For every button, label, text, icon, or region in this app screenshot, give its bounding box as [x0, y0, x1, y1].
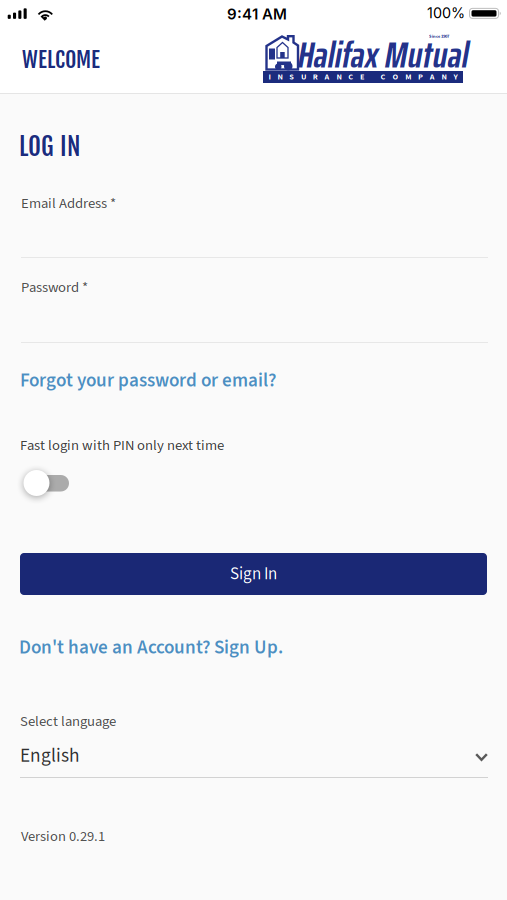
staticText: I: [269, 71, 271, 83]
staticText: Fast login with PIN only next time: [20, 435, 224, 456]
staticText: Don't have an Account? Sign Up.: [19, 634, 283, 661]
staticText: Halifax Mutual: [296, 26, 467, 84]
staticText: N: [442, 71, 447, 83]
staticText: Select language: [20, 711, 116, 732]
staticText: 9:41 AM: [227, 5, 287, 23]
staticText: WELCOME: [22, 46, 100, 73]
staticText: M: [405, 71, 411, 83]
button[interactable]: Password: [21, 277, 488, 343]
staticText: English: [20, 742, 80, 769]
staticText: E: [360, 71, 365, 83]
staticText: LOG IN: [19, 131, 80, 162]
button[interactable]: Don't have an Account? Sign Up.: [19, 634, 283, 661]
staticText: C: [381, 71, 386, 83]
staticText: 100%: [427, 4, 465, 22]
staticText: U: [301, 71, 306, 83]
staticText: Sign In: [230, 562, 277, 586]
button[interactable]: Forgot your password or email?: [20, 367, 276, 394]
staticText: R: [313, 71, 318, 83]
button[interactable]: Select language: English: [20, 742, 488, 778]
button[interactable]: Fast login with PIN only next time: [19, 467, 66, 496]
staticText: Since 1907: [429, 33, 449, 39]
staticText: P: [418, 71, 423, 83]
staticText: N: [277, 71, 282, 83]
staticText: Email Address *: [21, 193, 116, 214]
button[interactable]: Email Address: [21, 193, 488, 258]
staticText: A: [325, 71, 330, 83]
button[interactable]: Sign In: [20, 553, 487, 595]
staticText: A: [430, 71, 435, 83]
staticText: Y: [453, 71, 457, 83]
staticText: S: [289, 71, 294, 83]
staticText: N: [336, 71, 341, 83]
staticText: Forgot your password or email?: [20, 367, 276, 394]
staticText: Password *: [21, 277, 88, 298]
staticText: Version 0.29.1: [21, 826, 105, 847]
staticText: C: [348, 71, 353, 83]
staticText: O: [392, 71, 398, 83]
